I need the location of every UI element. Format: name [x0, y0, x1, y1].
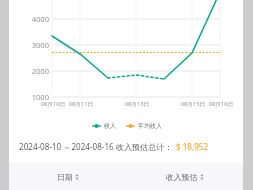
staticText: 3000: [21, 40, 49, 50]
staticText: 4000: [21, 14, 49, 24]
staticText: 收入: [104, 122, 116, 130]
staticText: 收入预估: [166, 172, 198, 182]
staticText: 2000: [21, 66, 49, 76]
staticText: 2024-08-10 ～2024-08-16 收入预估总计：: [19, 141, 173, 152]
staticText: 08月15日: [175, 100, 211, 108]
staticText: 08月13日: [119, 100, 155, 108]
button[interactable]: 收入: [92, 122, 116, 130]
button[interactable]: 平均收入: [126, 122, 162, 130]
staticText: 08月11日: [63, 100, 99, 108]
staticText: 日期: [57, 172, 73, 182]
other: Sort: [200, 174, 204, 180]
button[interactable]: 收入预估: [126, 172, 243, 182]
button[interactable]: 日期: [9, 172, 126, 182]
staticText: $ 18,952: [176, 141, 209, 152]
other: Sort: [75, 174, 79, 180]
staticText: 08月16日: [203, 100, 239, 108]
staticText: 平均收入: [138, 122, 162, 130]
staticText: 1000: [21, 92, 49, 102]
staticText: 08月10日: [35, 100, 71, 108]
